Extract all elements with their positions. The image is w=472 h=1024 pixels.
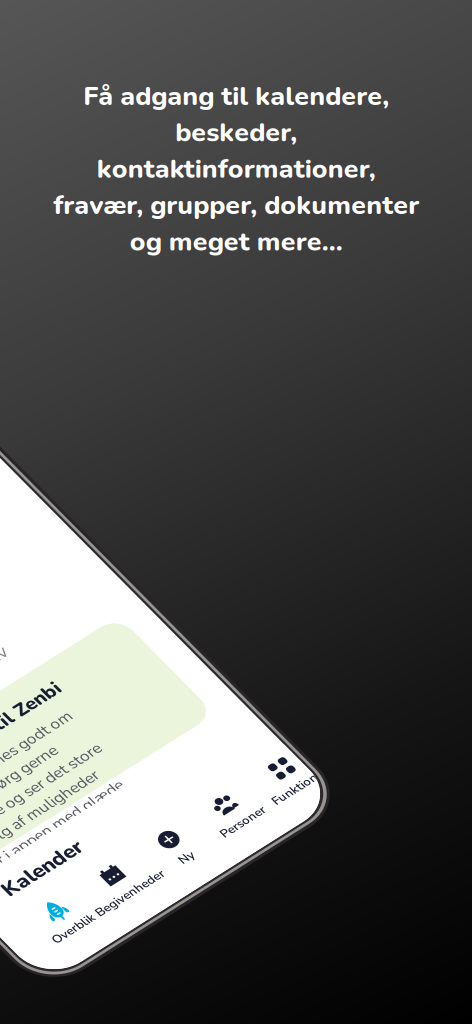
- staticText: Få adgang til kalendere, beskeder, konta…: [53, 78, 419, 260]
